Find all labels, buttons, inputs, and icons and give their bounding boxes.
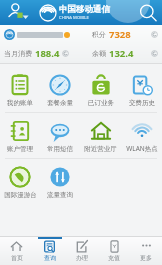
staticText: 附近营业厅 xyxy=(84,145,117,153)
button[interactable]: 流量查询 xyxy=(40,159,80,204)
button[interactable]: 首页 xyxy=(0,236,33,265)
button[interactable]: Account xyxy=(4,0,34,25)
button[interactable]: 余额 xyxy=(92,47,158,60)
staticText: 余额 xyxy=(92,49,106,58)
button[interactable]: 查询 xyxy=(33,236,66,265)
button[interactable]: 已订业务 xyxy=(80,67,121,112)
button[interactable]: 办理 xyxy=(66,236,98,265)
staticText: 已订业务 xyxy=(88,99,114,107)
button[interactable]: 常用短信 xyxy=(40,113,80,158)
staticText: 7328 xyxy=(109,28,131,41)
button[interactable]: 账户管理 xyxy=(0,113,40,158)
button[interactable]: 套餐余量 xyxy=(40,67,80,112)
staticText: 查询 xyxy=(44,254,56,262)
button[interactable]: 充值 xyxy=(98,236,130,265)
staticText: 188.4 xyxy=(35,47,60,60)
button[interactable]: 国际漫游台 xyxy=(0,159,40,204)
staticText: 积分 xyxy=(92,30,106,39)
staticText: 我的账单 xyxy=(7,99,33,107)
staticText: 首页 xyxy=(11,254,23,262)
staticText: 常用短信 xyxy=(47,145,73,153)
staticText: 交费历史 xyxy=(129,99,155,107)
button[interactable]: 附近营业厅 xyxy=(80,113,121,158)
button[interactable]: 更多 xyxy=(130,236,162,265)
staticText: 中国移动通信 xyxy=(59,4,110,15)
button[interactable] xyxy=(4,29,92,40)
staticText: 充值 xyxy=(108,254,120,262)
staticText: 套餐余量 xyxy=(47,99,73,107)
staticText: CHINA MOBILE xyxy=(59,15,89,21)
button[interactable]: 我的账单 xyxy=(0,67,40,112)
button[interactable]: 积分 xyxy=(92,28,158,41)
button[interactable]: Search xyxy=(138,3,158,23)
staticText: WLAN热点 xyxy=(126,144,158,153)
staticText: 更多 xyxy=(140,254,152,262)
staticText: 国际漫游台 xyxy=(4,191,37,199)
staticText: 流量查询 xyxy=(47,191,73,199)
button[interactable]: 交费历史 xyxy=(121,67,162,112)
button[interactable]: WLAN热点 xyxy=(121,113,162,158)
staticText: 账户管理 xyxy=(7,145,33,153)
staticText: 办理 xyxy=(76,254,88,262)
button[interactable]: 当月消费 xyxy=(4,47,92,60)
staticText: 132.4 xyxy=(109,47,134,60)
staticText: 当月消费 xyxy=(4,49,32,58)
